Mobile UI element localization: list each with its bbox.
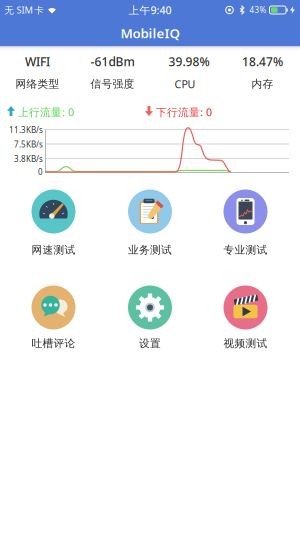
staticText: 信号强度 [90,77,134,90]
staticText: 无 SIM 卡 [4,4,43,16]
staticText: 专业测试 [223,243,267,256]
button[interactable]: 吐槽评论 [8,285,98,361]
staticText: 11.3KB/s [9,125,43,135]
staticText: 上行流量: 0 [18,105,74,119]
staticText: 内存 [251,77,273,90]
button[interactable]: 专业测试 [200,189,290,265]
staticText: 网络类型 [15,77,59,90]
staticText: 吐槽评论 [31,337,75,350]
button[interactable]: 业务测试 [105,189,195,265]
staticText: 业务测试 [128,243,172,256]
staticText: 7.5KB/s [14,139,43,150]
staticText: 网速测试 [31,243,75,256]
staticText: 上午9:40 [128,3,171,17]
staticText: 39.98% [168,53,209,69]
staticText: WIFI [25,53,50,69]
staticText: 3.8KB/s [14,154,43,164]
button[interactable]: 网速测试 [8,189,98,265]
button[interactable]: 设置 [105,285,195,361]
staticText: 设置 [139,337,161,350]
staticText: 视频测试 [223,337,267,350]
staticText: MobileIQ [120,24,179,42]
staticText: -61dBm [90,53,134,69]
staticText: 0 [38,167,43,177]
staticText: 43% [249,5,266,15]
button[interactable]: 视频测试 [200,285,290,361]
staticText: CPU [174,77,195,91]
staticText: 下行流量: 0 [156,105,212,119]
staticText: 18.47% [242,53,283,69]
